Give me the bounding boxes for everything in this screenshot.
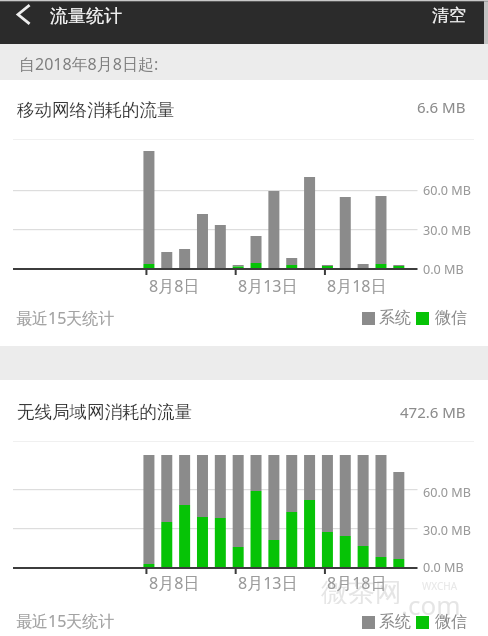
staticText: 最近15天统计 (16, 610, 115, 632)
staticText: 6.6 MB (417, 97, 466, 117)
staticText: 8月18日 (327, 572, 387, 594)
staticText: 清空 (432, 5, 466, 26)
staticText: 8月8日 (149, 275, 200, 297)
staticText: 移动网络消耗的流量 (17, 99, 175, 121)
staticText: 自2018年8月8日起: (19, 53, 159, 75)
staticText: 8月8日 (149, 572, 200, 594)
staticText: 0.0 MB (423, 261, 464, 278)
staticText: 30.0 MB (423, 522, 471, 539)
staticText: 8月13日 (238, 572, 298, 594)
staticText: 30.0 MB (423, 222, 471, 239)
staticText: 微茶网 (321, 576, 402, 604)
staticText: 最近15天统计 (16, 307, 115, 329)
staticText: WXCHA (422, 579, 458, 593)
staticText: 流量统计 (50, 5, 122, 28)
staticText: 8月13日 (238, 275, 298, 297)
staticText: 微信 (435, 308, 467, 328)
staticText: 60.0 MB (423, 182, 471, 199)
staticText: .com (401, 587, 461, 615)
staticText: 8月18日 (327, 275, 387, 297)
staticText: 系统 (379, 612, 411, 632)
button[interactable]: 清空 (386, 1, 466, 29)
staticText: 0.0 MB (423, 559, 464, 576)
button[interactable] (0, 0, 44, 44)
staticText: 系统 (379, 308, 411, 328)
staticText: 60.0 MB (423, 484, 471, 501)
staticText: 微信 (435, 612, 467, 632)
staticText: 472.6 MB (400, 402, 466, 422)
staticText: 无线局域网消耗的流量 (17, 401, 192, 423)
